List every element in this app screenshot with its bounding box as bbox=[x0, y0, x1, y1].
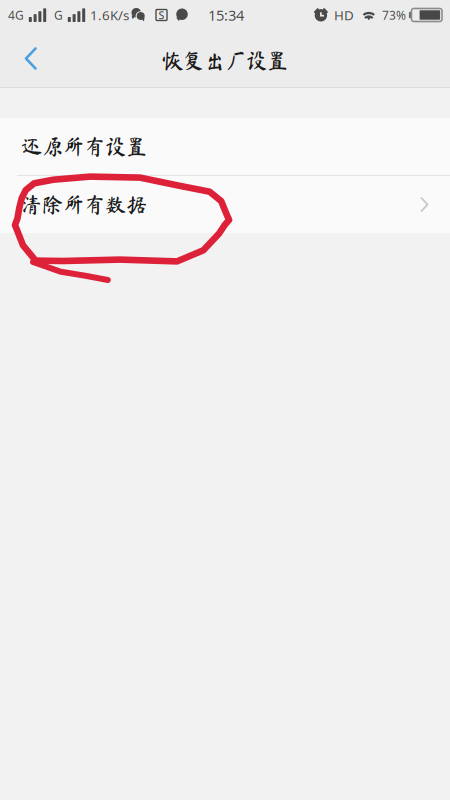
staticText: 4G bbox=[8, 7, 24, 23]
button[interactable]: 清除所有数据 bbox=[0, 176, 450, 233]
staticText: 73% bbox=[382, 7, 406, 23]
button[interactable]: 还原所有设置 bbox=[0, 118, 450, 175]
staticText: 清除所有数据 bbox=[21, 194, 147, 215]
staticText: G bbox=[54, 7, 63, 23]
staticText: 1.6K/s bbox=[90, 6, 129, 24]
staticText: S bbox=[158, 8, 164, 22]
button[interactable]: Back bbox=[9, 31, 53, 85]
staticText: 还原所有设置 bbox=[21, 136, 147, 157]
staticText: HD bbox=[334, 6, 354, 24]
staticText: 15:34 bbox=[208, 5, 244, 25]
staticText: 恢复出厂设置 bbox=[162, 50, 288, 71]
